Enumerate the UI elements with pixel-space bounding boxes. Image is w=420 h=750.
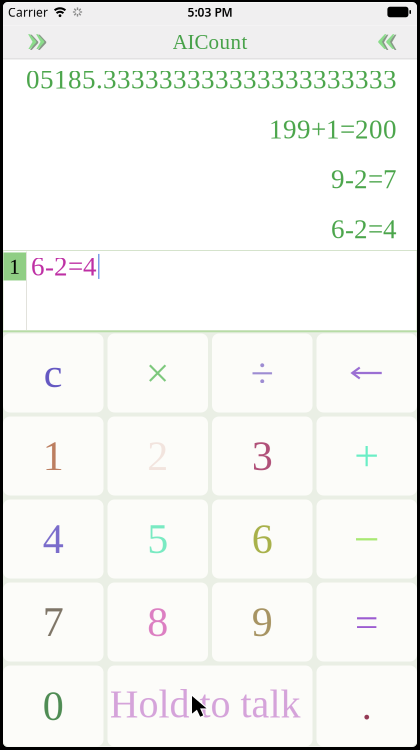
button[interactable]: 2	[107, 416, 208, 495]
staticText: c	[44, 350, 63, 396]
button[interactable]: Hold to talk	[107, 665, 312, 746]
staticText: 5:03 PM	[187, 4, 232, 20]
button[interactable]: 1	[3, 416, 103, 495]
staticText: 2	[147, 433, 168, 479]
button[interactable]: +	[316, 416, 417, 495]
staticText: ÷	[251, 350, 274, 396]
button[interactable]: 8	[107, 582, 208, 661]
button[interactable]: 3	[212, 416, 312, 495]
button[interactable]: «	[361, 25, 405, 58]
staticText: 0	[43, 683, 64, 729]
staticText: Hold to talk	[109, 682, 300, 726]
staticText: 6-2=4	[331, 214, 397, 244]
button[interactable]: ÷	[212, 333, 312, 412]
staticText: ×	[146, 350, 170, 396]
button[interactable]: .	[316, 665, 417, 746]
staticText: 1	[9, 254, 20, 279]
button[interactable]: 4	[3, 499, 103, 578]
staticText: AICount	[172, 30, 247, 54]
staticText: 199+1=200	[269, 114, 397, 144]
staticText: 9	[252, 599, 273, 645]
staticText: 1	[43, 433, 64, 479]
button[interactable]: 9	[212, 582, 312, 661]
button[interactable]: =	[316, 582, 417, 661]
staticText: 4	[43, 516, 64, 562]
staticText: «	[376, 15, 396, 59]
staticText: 6	[252, 516, 273, 562]
staticText: +	[354, 432, 379, 480]
button[interactable]: 5	[107, 499, 208, 578]
staticText: 6-2=4	[31, 251, 97, 281]
staticText: 05185.333333333333333333333	[26, 64, 397, 94]
staticText: .	[362, 684, 372, 728]
button[interactable]: ×	[107, 333, 208, 412]
button[interactable]: c	[3, 333, 103, 412]
button[interactable]: »	[15, 25, 59, 58]
staticText: 5	[147, 516, 168, 562]
staticText: »	[26, 15, 46, 59]
staticText: «	[378, 15, 398, 60]
staticText: 3	[252, 433, 273, 479]
staticText: =	[355, 599, 379, 645]
staticText: Carrier	[8, 4, 48, 20]
button[interactable]: 0	[3, 665, 103, 746]
staticText: »	[28, 15, 48, 60]
button[interactable]: −	[316, 499, 417, 578]
staticText: 7	[43, 599, 64, 645]
button[interactable]: 7	[3, 582, 103, 661]
button[interactable]	[316, 333, 417, 412]
staticText: 9-2=7	[331, 164, 397, 194]
staticText: 8	[147, 599, 168, 645]
button[interactable]: 6	[212, 499, 312, 578]
staticText: −	[354, 513, 380, 564]
